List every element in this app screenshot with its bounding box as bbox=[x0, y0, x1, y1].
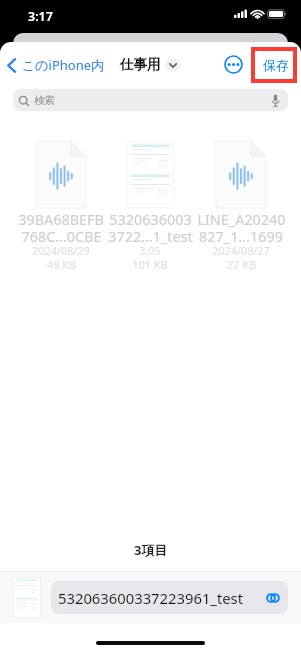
staticText: LINE_A20240 bbox=[197, 210, 286, 230]
staticText: 532063600337223961_test bbox=[58, 588, 244, 608]
button[interactable]: 保存 bbox=[261, 55, 291, 75]
button[interactable]: このiPhone内 bbox=[5, 53, 107, 77]
staticText: 検索 bbox=[34, 94, 55, 107]
staticText: 3:17 bbox=[28, 8, 53, 25]
button[interactable]: Toggle file extension bbox=[265, 590, 281, 606]
staticText: 48 KB bbox=[47, 257, 76, 272]
staticText: 27 KB bbox=[227, 257, 256, 272]
button[interactable]: 検索 bbox=[13, 89, 288, 111]
button[interactable]: 仕事用 bbox=[120, 56, 180, 73]
staticText: 3722...1_test bbox=[108, 227, 193, 247]
button[interactable]: 5320636003 bbox=[105, 141, 195, 271]
staticText: このiPhone内 bbox=[22, 56, 105, 74]
staticText: 768C...0CBE bbox=[21, 227, 102, 247]
staticText: 827_1...1699 bbox=[199, 227, 283, 247]
staticText: 101 KB bbox=[132, 257, 168, 272]
button[interactable]: Voice search bbox=[268, 93, 282, 107]
button[interactable]: More options bbox=[223, 54, 243, 74]
staticText: 39BA68BEFB bbox=[18, 210, 104, 230]
button[interactable]: LINE_A20240 bbox=[196, 141, 286, 271]
staticText: 保存 bbox=[263, 57, 289, 73]
staticText: 3項目 bbox=[134, 541, 168, 559]
button[interactable]: 532063600337223961_test bbox=[51, 581, 288, 614]
staticText: 5320636003 bbox=[109, 210, 192, 230]
staticText: 2024/08/27 bbox=[212, 243, 270, 258]
staticText: 3:05 bbox=[139, 243, 161, 258]
staticText: 2024/08/29 bbox=[32, 243, 90, 258]
button[interactable]: 39BA68BEFB bbox=[16, 141, 106, 271]
staticText: 仕事用 bbox=[120, 56, 161, 73]
button[interactable]: Document preview bbox=[13, 577, 41, 618]
